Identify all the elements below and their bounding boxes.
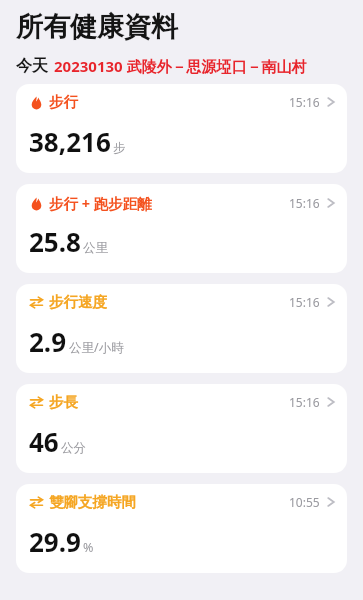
staticText: 15:16 (289, 195, 320, 211)
button[interactable]: 步長 (16, 384, 347, 473)
staticText: 公里 (83, 240, 108, 256)
staticText: 20230130 武陵外－思源埡口－南山村 (54, 56, 307, 76)
staticText: 25.8 (29, 224, 81, 259)
button[interactable]: 步行 (16, 84, 347, 173)
other: 查看詳情 (327, 295, 335, 309)
button[interactable]: 步行 + 跑步距離 (16, 184, 347, 273)
staticText: 步行 + 跑步距離 (49, 193, 152, 213)
staticText: 29.9 (29, 524, 81, 559)
other: 查看詳情 (327, 95, 335, 109)
staticText: 步行 (49, 93, 78, 111)
staticText: 38,216 (29, 124, 111, 159)
button[interactable]: 雙腳支撐時間 (16, 484, 347, 573)
button[interactable]: 步行速度 (16, 284, 347, 373)
staticText: 15:16 (289, 94, 320, 110)
staticText: 公里/小時 (69, 339, 124, 356)
staticText: 步長 (49, 393, 78, 411)
other: 查看詳情 (327, 196, 335, 210)
staticText: 15:16 (289, 394, 320, 410)
staticText: 15:16 (289, 294, 320, 310)
staticText: 所有健康資料 (16, 10, 178, 44)
other: 查看詳情 (327, 495, 335, 509)
other: 查看詳情 (327, 395, 335, 409)
staticText: 10:55 (289, 494, 320, 510)
staticText: 今天 (16, 56, 48, 76)
staticText: 步 (113, 140, 126, 156)
staticText: % (83, 539, 94, 556)
staticText: 公分 (61, 440, 86, 456)
staticText: 步行速度 (49, 293, 107, 311)
staticText: 46 (29, 424, 59, 459)
staticText: 雙腳支撐時間 (49, 493, 136, 511)
staticText: 2.9 (29, 324, 67, 359)
